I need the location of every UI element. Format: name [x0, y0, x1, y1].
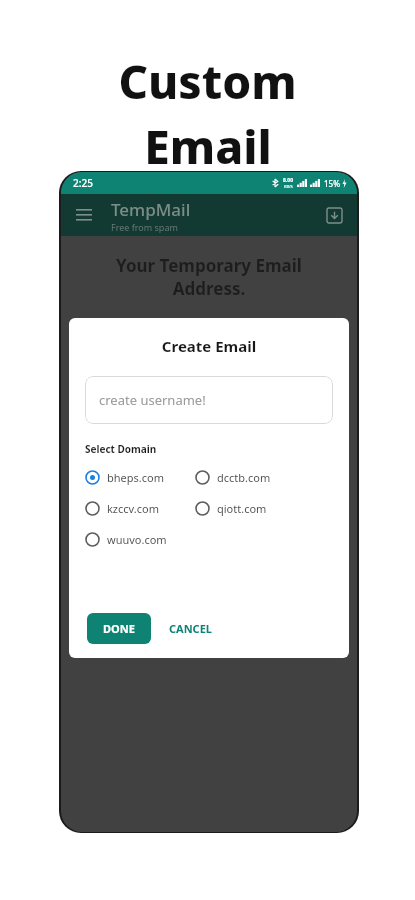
staticText: Email: [144, 115, 272, 178]
staticText: Select Domain: [85, 442, 157, 456]
button[interactable]: kzccv.com: [85, 493, 195, 524]
staticText: kzccv.com: [107, 501, 159, 516]
staticText: Free from spam: [111, 221, 178, 233]
staticText: CANCEL: [169, 621, 212, 636]
staticText: TempMail: [111, 198, 191, 221]
button[interactable]: dcctb.com: [195, 462, 305, 493]
staticText: wuuvo.com: [107, 532, 167, 547]
staticText: 2:25: [73, 176, 93, 190]
staticText: qiott.com: [217, 501, 267, 516]
button[interactable]: wuuvo.com: [85, 524, 195, 555]
button[interactable]: DONE: [87, 613, 151, 644]
staticText: 8.00: [283, 177, 293, 184]
button[interactable]: qiott.com: [195, 493, 305, 524]
button[interactable]: Open navigation menu: [71, 202, 97, 228]
staticText: DONE: [103, 621, 135, 636]
staticText: Custom: [118, 50, 297, 113]
staticText: dcctb.com: [217, 470, 271, 485]
button[interactable]: CANCEL: [159, 613, 222, 644]
button[interactable]: bheps.com: [85, 462, 195, 493]
staticText: create username!: [99, 391, 206, 409]
button[interactable]: Inbox: [321, 202, 347, 228]
staticText: Your Temporary Email Address.: [116, 254, 302, 300]
button[interactable]: create username!: [85, 376, 333, 424]
staticText: KB/S: [284, 184, 293, 189]
staticText: 15%: [324, 178, 340, 189]
staticText: Create Email: [85, 336, 333, 356]
staticText: bheps.com: [107, 470, 164, 485]
